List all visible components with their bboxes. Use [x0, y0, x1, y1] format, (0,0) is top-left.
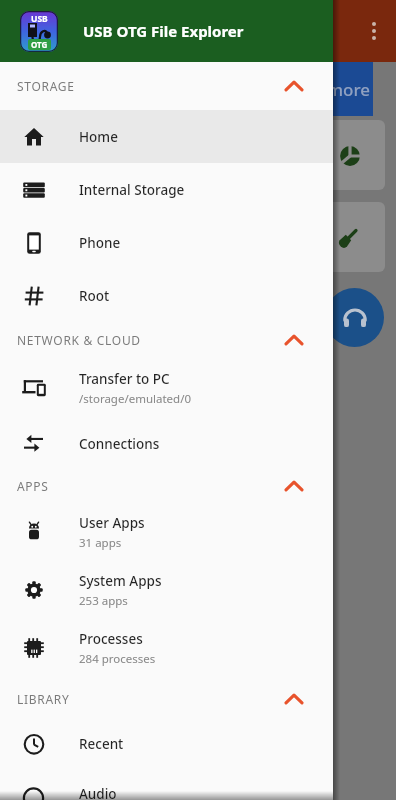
- button[interactable]: LIBRARY: [0, 677, 333, 721]
- staticText: 31 apps: [79, 535, 122, 551]
- staticText: STORAGE: [17, 78, 75, 94]
- button[interactable]: Home: [0, 110, 333, 163]
- staticText: Audio: [79, 785, 117, 800]
- button[interactable]: APPS: [0, 469, 333, 503]
- button[interactable]: Connections: [0, 419, 333, 469]
- button[interactable]: [300, 120, 385, 190]
- button[interactable]: Phone: [0, 216, 333, 269]
- staticText: Processes: [79, 630, 143, 648]
- staticText: USB: [31, 13, 48, 25]
- staticText: APPS: [17, 478, 49, 494]
- button[interactable]: STORAGE: [0, 62, 333, 110]
- button[interactable]: Root: [0, 269, 333, 322]
- staticText: Root: [79, 287, 110, 305]
- button[interactable]: NETWORK & CLOUD: [0, 322, 333, 357]
- button[interactable]: User Apps: [0, 503, 333, 561]
- staticText: Transfer to PC: [79, 370, 170, 388]
- button[interactable]: System Apps: [0, 561, 333, 619]
- button[interactable]: more: [295, 62, 373, 116]
- staticText: USB OTG File Explorer: [83, 21, 244, 41]
- staticText: Connections: [79, 435, 160, 453]
- button[interactable]: [325, 288, 384, 347]
- button[interactable]: Recent: [0, 721, 333, 767]
- button[interactable]: [300, 202, 385, 272]
- staticText: Internal Storage: [79, 181, 185, 199]
- button[interactable]: Internal Storage: [0, 163, 333, 216]
- staticText: User Apps: [79, 514, 145, 532]
- staticText: NETWORK & CLOUD: [17, 332, 141, 348]
- staticText: LIBRARY: [17, 691, 70, 707]
- button[interactable]: [357, 10, 385, 52]
- staticText: /storage/emulated/0: [79, 391, 192, 407]
- staticText: Phone: [79, 234, 121, 252]
- staticText: Recent: [79, 735, 124, 753]
- button[interactable]: Transfer to PC: [0, 357, 333, 419]
- staticText: more: [327, 78, 371, 101]
- staticText: 284 processes: [79, 651, 156, 667]
- staticText: System Apps: [79, 572, 162, 590]
- button[interactable]: Processes: [0, 619, 333, 677]
- staticText: Home: [79, 128, 118, 146]
- button[interactable]: Audio: [0, 767, 333, 800]
- staticText: OTG: [31, 39, 48, 50]
- staticText: 253 apps: [79, 593, 128, 609]
